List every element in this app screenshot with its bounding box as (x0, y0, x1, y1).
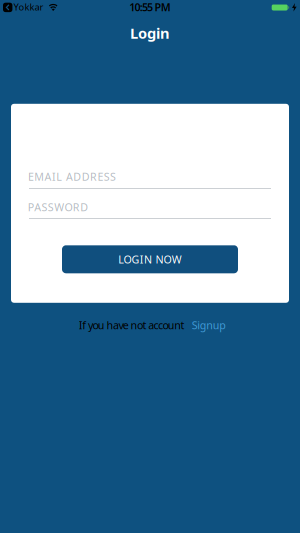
button[interactable]: LOGIN NOW (62, 245, 238, 273)
button[interactable]: PASSWORD (29, 199, 271, 223)
staticText: 10:55 PM (129, 0, 171, 14)
button[interactable]: EMAIL ADDRESS (29, 168, 271, 192)
staticText: Yokkar (13, 1, 43, 13)
staticText: If you have not account (79, 318, 185, 332)
button[interactable]: Signup (192, 318, 226, 332)
staticText: LOGIN NOW (118, 252, 182, 266)
staticText: EMAIL ADDRESS (28, 169, 116, 184)
staticText: PASSWORD (28, 200, 88, 214)
staticText: Signup (192, 318, 226, 332)
staticText: Login (130, 23, 170, 43)
